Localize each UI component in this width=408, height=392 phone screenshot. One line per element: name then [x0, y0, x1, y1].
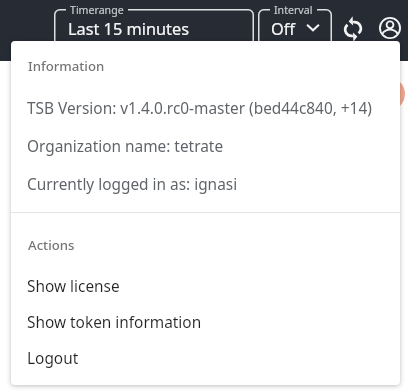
- staticText: Show token information: [27, 312, 202, 333]
- staticText: TSB Version: v1.4.0.rc0-master (bed44c84…: [27, 98, 372, 119]
- button[interactable]: Show token information: [11, 302, 400, 338]
- staticText: Interval: [274, 3, 313, 17]
- staticText: Timerange: [70, 3, 124, 17]
- staticText: Currently logged in as: ignasi: [27, 174, 238, 195]
- staticText: Off: [271, 18, 295, 40]
- button[interactable]: Account: [372, 10, 408, 46]
- button[interactable]: Refresh: [335, 11, 371, 47]
- staticText: Show license: [27, 276, 120, 297]
- button[interactable]: Logout: [11, 338, 400, 374]
- staticText: Information: [28, 57, 105, 75]
- staticText: Logout: [27, 348, 79, 369]
- button[interactable]: Show license: [11, 266, 400, 302]
- staticText: Organization name: tetrate: [27, 136, 224, 157]
- staticText: Actions: [28, 236, 75, 254]
- staticText: Last 15 minutes: [68, 18, 189, 40]
